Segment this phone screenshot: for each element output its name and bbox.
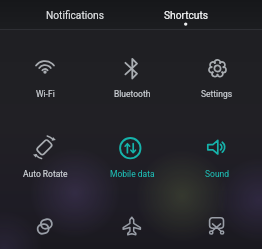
button[interactable]: [87, 110, 174, 190]
button[interactable]: [0, 110, 87, 190]
staticText: Mobile data: [110, 169, 155, 179]
staticText: Settings: [201, 89, 233, 99]
button[interactable]: [131, 0, 262, 29]
button[interactable]: [0, 33, 87, 110]
button[interactable]: [87, 33, 174, 110]
staticText: Shortcuts: [164, 10, 209, 22]
staticText: Bluetooth: [114, 89, 151, 99]
button[interactable]: [0, 0, 131, 29]
staticText: Auto Rotate: [23, 169, 68, 179]
button[interactable]: [175, 33, 262, 110]
button[interactable]: [0, 190, 87, 249]
button[interactable]: [175, 110, 262, 190]
staticText: Wi-Fi: [36, 89, 55, 99]
button[interactable]: [175, 190, 262, 249]
button[interactable]: [87, 190, 174, 249]
staticText: Notifications: [46, 10, 104, 22]
staticText: Sound: [205, 169, 230, 179]
